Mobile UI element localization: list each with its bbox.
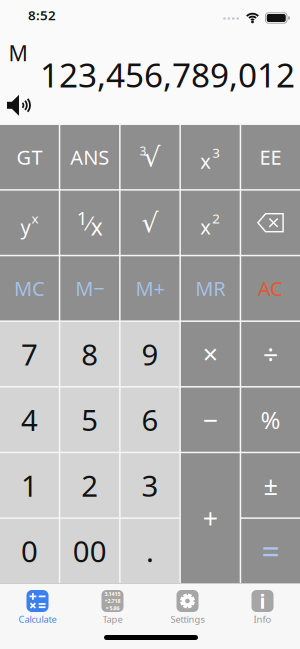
button[interactable]: − xyxy=(181,388,240,452)
staticText: i xyxy=(259,588,265,614)
staticText: 2 xyxy=(212,209,220,227)
staticText: 3.1415 xyxy=(104,590,120,597)
button[interactable]: % xyxy=(241,388,300,452)
staticText: 3 xyxy=(212,144,220,161)
button[interactable]: Speak result xyxy=(7,94,31,117)
staticText: AC xyxy=(258,275,283,302)
button[interactable]: Delete xyxy=(241,191,300,255)
staticText: y xyxy=(20,213,30,240)
staticText: 1 xyxy=(21,466,38,505)
staticText: 4 xyxy=(21,400,38,439)
staticText: 7 xyxy=(21,334,38,373)
button[interactable]: GT xyxy=(0,125,59,189)
button[interactable]: 1 xyxy=(0,453,59,517)
button[interactable]: 0 xyxy=(0,519,59,583)
button[interactable]: M+ xyxy=(121,256,179,320)
button[interactable]: x xyxy=(181,191,240,255)
button[interactable]: Settings xyxy=(150,590,225,625)
button[interactable]: = xyxy=(241,519,300,583)
staticText: + xyxy=(203,500,218,536)
button[interactable]: 3 xyxy=(121,125,179,189)
button[interactable]: 7 xyxy=(0,322,59,386)
staticText: Calculate xyxy=(18,613,56,625)
button[interactable]: ÷ xyxy=(241,322,300,386)
staticText: 3 xyxy=(141,466,158,505)
staticText: × xyxy=(203,336,218,372)
staticText: 5 xyxy=(81,400,98,439)
button[interactable]: y xyxy=(0,191,59,255)
button[interactable]: 5 xyxy=(60,388,119,452)
staticText: 9 xyxy=(141,334,158,373)
staticText: 8 xyxy=(81,334,98,373)
staticText: ⁄ xyxy=(88,209,91,236)
button[interactable]: i xyxy=(225,590,300,625)
staticText: +2.718 xyxy=(104,597,120,605)
button[interactable]: . xyxy=(121,519,179,583)
button[interactable]: 3.1415 xyxy=(75,590,150,625)
staticText: M+ xyxy=(135,275,164,302)
staticText: 3 xyxy=(139,143,146,159)
button[interactable]: ± xyxy=(241,453,300,517)
staticText: = 5.86 xyxy=(105,604,119,612)
button[interactable]: 3 xyxy=(121,453,179,517)
staticText: EE xyxy=(260,144,282,170)
button[interactable]: 6 xyxy=(121,388,179,452)
button[interactable]: 4 xyxy=(0,388,59,452)
button[interactable]: 8 xyxy=(60,322,119,386)
staticText: 6 xyxy=(141,400,158,439)
staticText: Tape xyxy=(102,613,122,625)
staticText: 00 xyxy=(73,531,107,570)
button[interactable]: AC xyxy=(241,256,300,320)
staticText: MC xyxy=(14,275,45,302)
staticText: x xyxy=(31,209,38,227)
button[interactable]: × xyxy=(181,322,240,386)
staticText: √ xyxy=(141,208,158,238)
button[interactable]: ANS xyxy=(60,125,119,189)
staticText: GT xyxy=(16,144,42,170)
button[interactable]: + xyxy=(181,453,240,583)
staticText: ÷ xyxy=(263,336,278,372)
staticText: ANS xyxy=(70,144,109,170)
staticText: x xyxy=(91,212,103,242)
staticText: x xyxy=(200,213,211,240)
button[interactable]: Calculate xyxy=(0,590,75,625)
staticText: = xyxy=(262,530,280,572)
button[interactable]: 2 xyxy=(60,453,119,517)
staticText: MR xyxy=(195,275,225,302)
staticText: Settings xyxy=(170,613,204,625)
button[interactable]: MC xyxy=(0,256,59,320)
staticText: 2 xyxy=(81,466,98,505)
button[interactable]: M− xyxy=(60,256,119,320)
staticText: . xyxy=(146,531,154,570)
button[interactable]: √ xyxy=(121,191,179,255)
button[interactable]: 9 xyxy=(121,322,179,386)
staticText: 123,456,789,012 xyxy=(40,52,295,97)
staticText: √ xyxy=(143,142,160,172)
button[interactable]: EE xyxy=(241,125,300,189)
staticText: M− xyxy=(75,275,104,302)
staticText: M xyxy=(8,39,27,67)
button[interactable]: x xyxy=(181,125,240,189)
staticText: − xyxy=(203,402,218,437)
staticText: Info xyxy=(253,613,271,625)
staticText: 8:52 xyxy=(28,6,56,24)
button[interactable]: 00 xyxy=(60,519,119,583)
staticText: % xyxy=(261,404,281,436)
staticText: x xyxy=(200,148,211,174)
button[interactable]: MR xyxy=(181,256,240,320)
staticText: 0 xyxy=(21,531,38,570)
staticText: ± xyxy=(264,468,278,502)
staticText: 1 xyxy=(77,205,88,230)
button[interactable]: 1 xyxy=(60,191,119,255)
